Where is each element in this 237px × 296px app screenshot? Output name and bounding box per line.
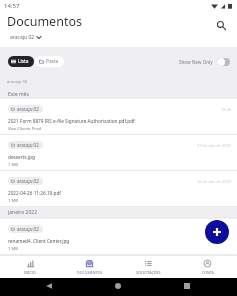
staticText: 15:40 xyxy=(221,107,232,112)
staticText: aracaju 02 xyxy=(7,79,28,85)
staticText: 27 de abr. de 2022 xyxy=(197,143,232,148)
staticText: 14:57 xyxy=(4,2,20,10)
staticText: Lista xyxy=(18,58,29,65)
staticText: desserts.jpg xyxy=(8,154,35,160)
button[interactable]: Add document xyxy=(205,220,229,244)
button[interactable]: INÍCIO xyxy=(0,256,60,278)
staticText: Este mês xyxy=(8,91,29,97)
staticText: aracaju 02 xyxy=(17,226,39,232)
button[interactable]: aracaju 02 xyxy=(0,171,237,207)
button[interactable]: SOLICITAÇÕES xyxy=(119,256,178,278)
staticText: Show New Only xyxy=(179,59,213,65)
staticText: DOCUMENTOS xyxy=(77,270,103,275)
button[interactable]: Show New Only toggle xyxy=(217,58,230,66)
staticText: 2021 Form 8879 IRS e-file Signature Auth… xyxy=(8,118,135,124)
button[interactable]: aracaju 02 xyxy=(0,219,237,255)
staticText: 26 de abr. de 2022 xyxy=(197,179,232,184)
staticText: Pasta xyxy=(46,58,59,65)
staticText: aracaju 02 xyxy=(17,106,39,112)
staticText: 1 MB xyxy=(8,246,19,252)
staticText: 1 MB xyxy=(8,162,19,168)
staticText: aracaju 02 xyxy=(17,178,39,184)
staticText: CONTA xyxy=(202,270,214,275)
button[interactable]: aracaju 02 xyxy=(0,99,237,135)
button[interactable]: Search xyxy=(212,16,230,34)
staticText: janeiro 2022 xyxy=(8,209,38,216)
staticText: SOLICITAÇÕES xyxy=(136,270,161,275)
staticText: renamed4. Client Center.jpg xyxy=(8,238,70,244)
button[interactable]: Recent apps xyxy=(181,280,193,292)
staticText: Documentos xyxy=(7,13,82,30)
staticText: 1 MB xyxy=(8,198,19,204)
button[interactable]: Home xyxy=(112,280,124,292)
staticText: aracaju 02 xyxy=(17,142,39,148)
button[interactable]: DOCUMENTOS xyxy=(60,256,119,278)
button[interactable]: Pasta xyxy=(35,56,64,67)
button[interactable]: aracaju 02 xyxy=(0,135,237,171)
staticText: 2022-04-26 11:26.19.pdf xyxy=(8,190,61,196)
button[interactable]: Back xyxy=(43,280,55,292)
staticText: aracaju 02 xyxy=(10,34,35,41)
staticText: Visa Cliente Prod xyxy=(8,126,42,132)
button[interactable]: Lista xyxy=(8,56,34,67)
staticText: INÍCIO xyxy=(24,270,36,275)
button[interactable]: CONTA xyxy=(178,256,237,278)
